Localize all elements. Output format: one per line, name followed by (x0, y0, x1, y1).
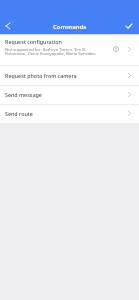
staticText: Send route (5, 110, 33, 117)
button[interactable]: Request configuration (0, 33, 139, 65)
button[interactable]: Back (0, 18, 15, 33)
button[interactable]: Request photo from camera (0, 65, 139, 85)
staticText: Send message (5, 91, 42, 98)
button[interactable]: Send message (0, 85, 139, 104)
staticText: Request photo from camera (5, 72, 77, 79)
staticText: Not supported for: Kathryn Torres, Tim B… (5, 47, 96, 57)
button[interactable]: Send route (0, 104, 139, 123)
staticText: Request configuration (5, 38, 62, 45)
button[interactable]: Not supported info (111, 44, 121, 54)
staticText: Commands (53, 22, 87, 30)
button[interactable]: Confirm (121, 18, 136, 33)
